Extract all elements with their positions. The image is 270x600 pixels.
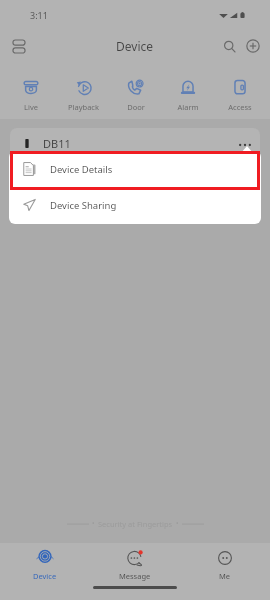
button[interactable]: Message bbox=[90, 549, 180, 581]
button[interactable]: Playback bbox=[57, 78, 110, 112]
staticText: 3:11 bbox=[30, 9, 48, 21]
button[interactable]: Access bbox=[214, 78, 266, 112]
staticText: Device bbox=[33, 571, 57, 581]
staticText: Security at Fingertips bbox=[98, 519, 173, 529]
staticText: Message bbox=[119, 571, 151, 581]
staticText: • bbox=[176, 519, 179, 529]
button[interactable]: More options bbox=[237, 135, 253, 151]
staticText: • bbox=[92, 519, 95, 529]
staticText: Device Sharing bbox=[50, 199, 117, 212]
staticText: Me bbox=[219, 571, 231, 581]
button[interactable]: Alarm bbox=[162, 78, 214, 112]
button[interactable]: Search bbox=[218, 35, 240, 57]
staticText: Device Details bbox=[50, 163, 113, 176]
staticText: Access bbox=[228, 102, 252, 112]
button[interactable]: Live bbox=[4, 78, 57, 112]
staticText: Playback bbox=[68, 102, 99, 112]
button[interactable]: Door bbox=[110, 78, 162, 112]
button[interactable]: Device bbox=[0, 549, 90, 581]
staticText: DB11 bbox=[43, 136, 71, 151]
staticText: Device bbox=[116, 38, 154, 54]
button[interactable]: Add device bbox=[242, 35, 264, 57]
button[interactable]: Me bbox=[180, 549, 270, 581]
button[interactable]: Device Sharing bbox=[9, 187, 261, 223]
staticText: Live bbox=[24, 102, 38, 112]
staticText: Door bbox=[127, 102, 145, 112]
button[interactable]: Layout switch bbox=[6, 33, 32, 59]
staticText: Alarm bbox=[177, 102, 199, 112]
button[interactable]: Device Details bbox=[9, 151, 261, 187]
